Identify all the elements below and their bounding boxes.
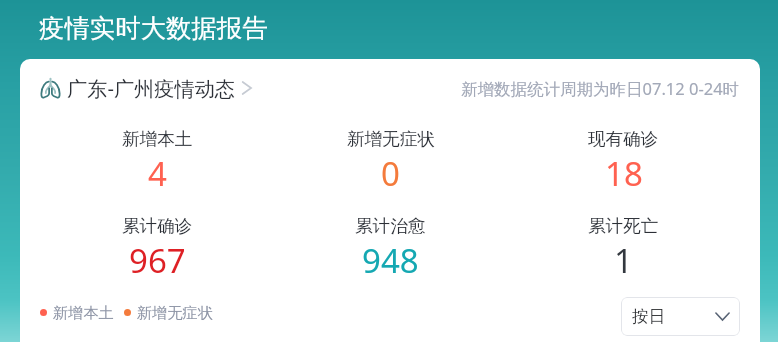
staticText: 新增数据统计周期为昨日07.12 0-24时 [461,77,740,100]
button[interactable]: 累计治愈 [274,215,507,302]
button[interactable]: 新增本土 [40,303,114,322]
staticText: 948 [362,238,419,283]
staticText: 累计死亡 [588,215,659,237]
staticText: 0 [381,151,400,196]
staticText: 广东-广州疫情动态 [67,74,236,102]
staticText: 18 [605,151,643,196]
button[interactable]: 新增无症状 [274,128,507,215]
button[interactable]: 现有确诊 [507,128,740,215]
other: More [241,81,255,95]
staticText: 按日 [632,306,665,327]
other: Expand [715,311,730,322]
staticText: 新增无症状 [347,128,435,150]
button[interactable]: 按日 [621,297,740,336]
staticText: 累计治愈 [355,215,426,237]
button[interactable]: 新增无症状 [124,303,213,322]
button[interactable]: 新增本土 [40,128,274,215]
staticText: 新增本土 [53,303,114,322]
button[interactable]: 广东-广州疫情动态 [40,74,255,102]
staticText: 4 [148,151,167,196]
button[interactable]: 累计死亡 [507,215,740,302]
staticText: 累计确诊 [122,215,193,237]
staticText: 新增本土 [122,128,193,150]
staticText: 疫情实时大数据报告 [39,13,268,45]
staticText: 新增无症状 [137,303,213,322]
staticText: 现有确诊 [588,128,659,150]
button[interactable]: 累计确诊 [40,215,274,302]
staticText: 1 [614,238,633,283]
staticText: 967 [129,238,186,283]
